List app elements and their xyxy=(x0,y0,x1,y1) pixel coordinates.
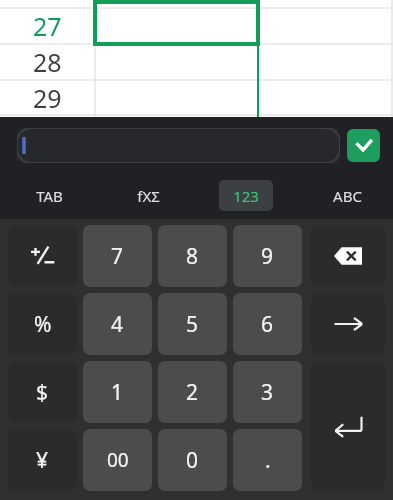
button[interactable]: ¥ xyxy=(8,429,77,491)
button[interactable]: Enter xyxy=(311,361,385,491)
button[interactable]: 27 xyxy=(0,8,95,44)
staticText: 7 xyxy=(111,242,124,271)
button[interactable]: 29 xyxy=(0,80,95,116)
button[interactable]: 6 xyxy=(233,293,302,355)
staticText: 2 xyxy=(186,378,199,407)
staticText: % xyxy=(34,310,52,339)
staticText: 6 xyxy=(261,310,274,339)
button[interactable]: 3 xyxy=(233,361,302,423)
button[interactable]: 4 xyxy=(83,293,152,355)
staticText: 1 xyxy=(111,378,124,407)
button[interactable]: 2 xyxy=(158,361,227,423)
staticText: TAB xyxy=(36,186,63,206)
button[interactable]: % xyxy=(8,293,77,355)
button[interactable]: 1 xyxy=(83,361,152,423)
button[interactable]: Backspace xyxy=(311,225,385,287)
button[interactable]: 0 xyxy=(158,429,227,491)
button[interactable]: 123 xyxy=(219,180,273,211)
staticText: 3 xyxy=(261,378,274,407)
staticText: ABC xyxy=(333,186,362,206)
button[interactable]: 00 xyxy=(83,429,152,491)
button[interactable]: Next xyxy=(311,293,385,355)
staticText: 00 xyxy=(107,447,129,473)
staticText: 0 xyxy=(186,446,199,475)
button[interactable]: . xyxy=(233,429,302,491)
button[interactable]: Confirm xyxy=(347,129,380,162)
button[interactable]: $ xyxy=(8,361,77,423)
staticText: 4 xyxy=(111,310,124,339)
button[interactable] xyxy=(17,128,340,163)
staticText: 8 xyxy=(186,242,199,271)
staticText: 28 xyxy=(33,45,62,79)
button[interactable]: TAB xyxy=(22,180,76,211)
button[interactable]: 7 xyxy=(83,225,152,287)
button[interactable]: ABC xyxy=(320,180,374,211)
staticText: fXΣ xyxy=(137,186,160,206)
button[interactable]: 5 xyxy=(158,293,227,355)
staticText: . xyxy=(265,446,271,475)
button[interactable]: fXΣ xyxy=(121,180,175,211)
button[interactable] xyxy=(8,225,77,287)
staticText: 27 xyxy=(33,9,62,43)
staticText: ¥ xyxy=(36,446,49,475)
staticText: $ xyxy=(36,378,49,407)
staticText: 9 xyxy=(261,242,274,271)
button[interactable]: 28 xyxy=(0,44,95,80)
button[interactable]: 9 xyxy=(233,225,302,287)
button[interactable]: 8 xyxy=(158,225,227,287)
staticText: 29 xyxy=(33,81,62,115)
staticText: 5 xyxy=(186,310,199,339)
staticText: 123 xyxy=(233,186,259,206)
